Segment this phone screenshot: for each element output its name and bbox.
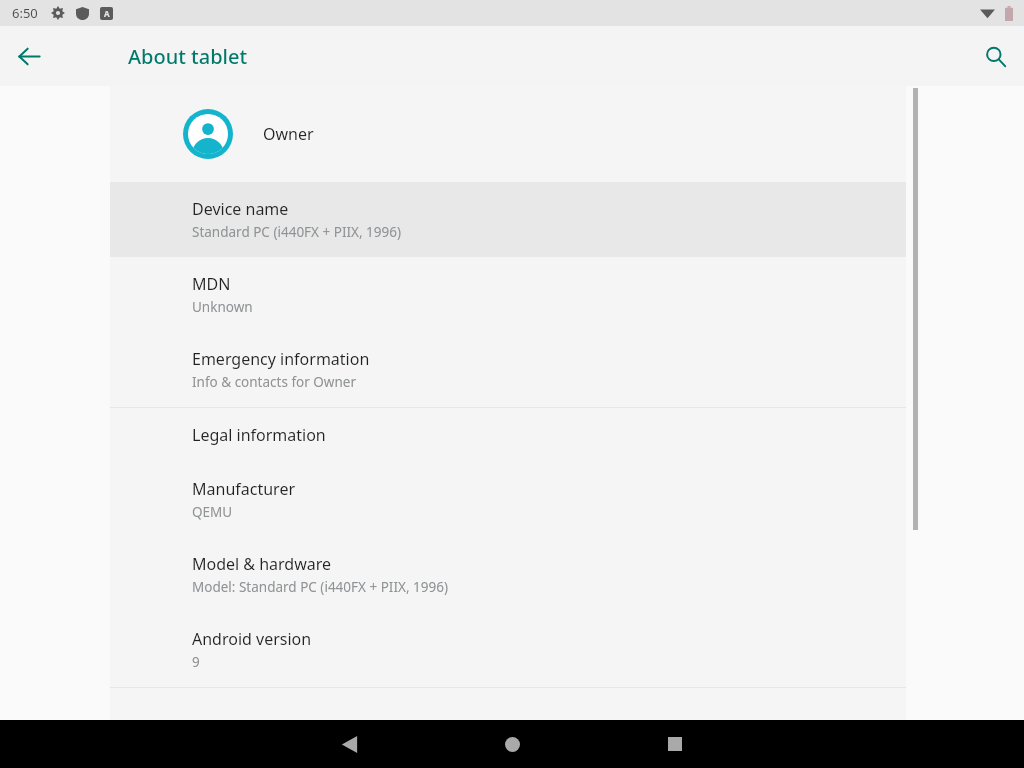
staticText: Unknown (192, 298, 253, 316)
staticText: Android version (192, 628, 312, 650)
button[interactable]: Android version (110, 612, 906, 687)
staticText: Owner (263, 123, 314, 145)
staticText: Emergency information (192, 348, 370, 370)
staticText: QEMU (192, 503, 233, 521)
staticText: Model & hardware (192, 553, 332, 575)
button[interactable]: Search (972, 33, 1018, 79)
staticText: MDN (192, 273, 231, 295)
staticText: 6:50 (12, 4, 38, 22)
button[interactable]: Back (327, 722, 371, 766)
button[interactable]: Owner (110, 86, 906, 182)
button[interactable]: Navigate up (6, 33, 52, 79)
staticText: Manufacturer (192, 478, 296, 500)
button[interactable]: MDN (110, 257, 906, 332)
staticText: 9 (192, 653, 200, 671)
button[interactable]: Manufacturer (110, 462, 906, 537)
button[interactable]: Recent apps (653, 722, 697, 766)
button[interactable]: Legal information (110, 408, 906, 462)
staticText: About tablet (128, 43, 248, 70)
staticText: Device name (192, 198, 289, 220)
staticText: Info & contacts for Owner (192, 373, 356, 391)
staticText: Legal information (192, 424, 326, 446)
button[interactable]: Device name (110, 182, 906, 257)
staticText: A (104, 8, 110, 19)
staticText: Model: Standard PC (i440FX + PIIX, 1996) (192, 578, 448, 596)
staticText: Standard PC (i440FX + PIIX, 1996) (192, 223, 402, 241)
button[interactable]: Home (490, 722, 534, 766)
button[interactable]: Emergency information (110, 332, 906, 407)
button[interactable]: Model & hardware (110, 537, 906, 612)
